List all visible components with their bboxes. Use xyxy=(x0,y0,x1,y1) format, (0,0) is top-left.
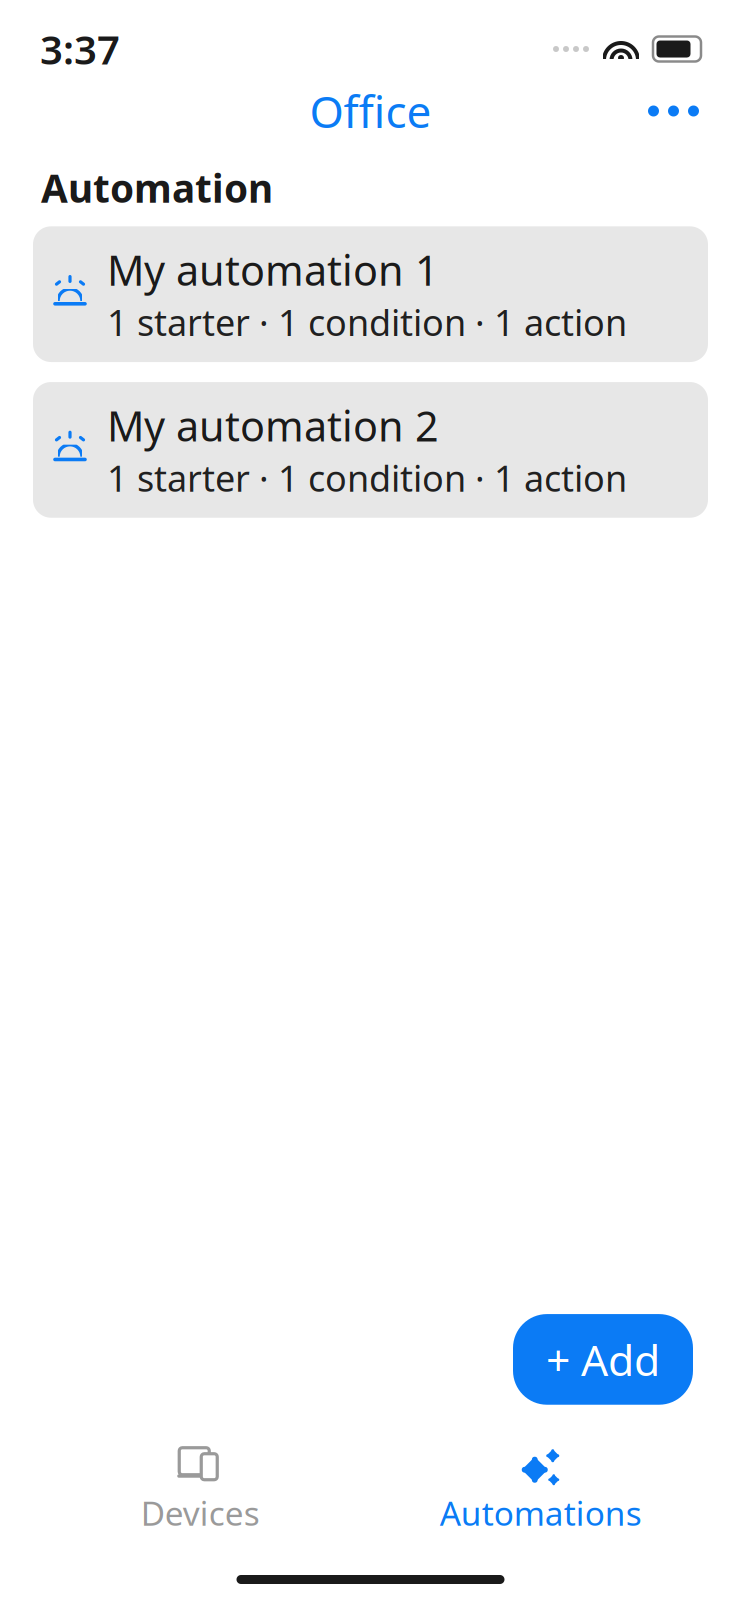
staticText: 1 starter · 1 condition · 1 action xyxy=(107,298,627,346)
staticText: + Add xyxy=(546,1331,660,1388)
staticText: Automations xyxy=(440,1491,642,1535)
button[interactable]: My automation 2 xyxy=(33,382,708,518)
staticText: Automation xyxy=(41,162,273,213)
staticText: My automation 2 xyxy=(107,398,439,453)
staticText: Office xyxy=(309,82,431,140)
button[interactable]: + Add xyxy=(513,1314,693,1405)
staticText: My automation 1 xyxy=(107,242,439,297)
button[interactable]: Office xyxy=(291,74,449,148)
staticText: Devices xyxy=(141,1491,260,1535)
button[interactable]: My automation 1 xyxy=(33,226,708,362)
button[interactable]: More options xyxy=(632,89,715,132)
staticText: 3:37 xyxy=(40,22,120,75)
button[interactable]: Devices xyxy=(30,1439,370,1541)
staticText: 1 starter · 1 condition · 1 action xyxy=(107,454,627,502)
button[interactable]: Automations xyxy=(370,1439,711,1541)
